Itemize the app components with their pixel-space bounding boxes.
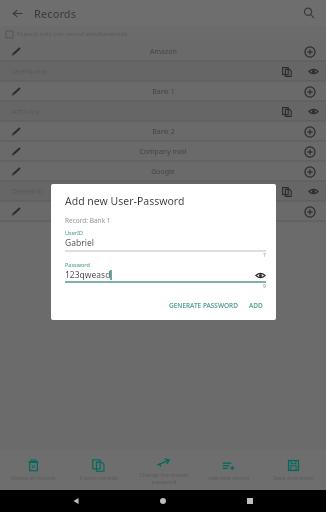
staticText: Record: Bank 1 [65,216,111,225]
staticText: Demetrio [12,187,44,197]
button[interactable]: Edit record [0,162,326,181]
staticText: Records [34,6,76,21]
button[interactable]: Edit record [0,42,32,61]
button[interactable]: UserName [0,62,326,81]
staticText: 7 [263,252,266,259]
button[interactable]: 123qweasd [65,269,266,281]
button[interactable]: Edit record [0,162,32,181]
button[interactable]: Copy [274,182,300,201]
button[interactable]: Back [65,490,87,512]
button[interactable]: Add entry [294,42,326,61]
staticText: Anthony [12,107,40,117]
button[interactable]: Demetrio [0,182,326,201]
button[interactable]: Recents [239,490,261,512]
staticText: UserID [65,229,83,236]
staticText: Bank 1 [152,87,175,97]
staticText: 123qweasd [65,269,111,281]
staticText: Company mail [139,147,187,157]
button[interactable]: ADD [246,298,266,313]
staticText: Export records [80,474,118,481]
staticText: 9 [263,283,266,290]
staticText: Save and return [273,474,315,481]
staticText: GENERATE PASSWORD [169,301,238,310]
button[interactable]: Delete all records [0,450,66,490]
button[interactable]: Reveal [300,182,326,201]
button[interactable]: Edit record [0,202,326,221]
button[interactable]: Search [292,0,326,26]
button[interactable]: Gabriel [65,237,266,249]
button[interactable]: Add entry [294,122,326,141]
staticText: Google [151,167,175,177]
button[interactable]: Edit record [0,122,32,141]
staticText: Bank 2 [152,127,175,137]
button[interactable]: Add entry [294,202,326,221]
button[interactable]: Edit record [0,122,326,141]
button[interactable]: Edit record [0,82,32,101]
button[interactable]: Edit record [0,82,326,101]
button[interactable]: Save and return [261,450,326,490]
button[interactable]: Home [152,490,174,512]
staticText: Add new User-Password [65,194,185,208]
button[interactable]: Add new record [196,450,261,490]
button[interactable]: Show password [254,269,266,281]
staticText: UserName [12,67,48,77]
staticText: Add new record [208,474,249,481]
staticText: Password [65,261,90,268]
button[interactable]: Edit record [0,202,32,221]
button[interactable]: Copy [274,62,300,81]
button[interactable]: Anthony [0,102,326,121]
button[interactable]: Add entry [294,82,326,101]
button[interactable]: Reveal [300,102,326,121]
staticText: Amazon [150,47,177,57]
staticText: Gabriel [65,237,94,249]
button[interactable]: Add entry [294,142,326,161]
staticText: ADD [249,301,263,310]
staticText: Expand only one record simultaneously [17,30,128,38]
staticText: Change the master password [139,471,189,485]
button[interactable]: Export records [66,450,131,490]
button[interactable]: Copy [274,102,300,121]
button[interactable]: Change the master password [131,450,196,490]
button[interactable]: Edit record [0,42,326,61]
button[interactable]: Edit record [0,142,326,161]
staticText: Delete all records [11,474,56,481]
button[interactable]: Add entry [294,162,326,181]
button[interactable]: Reveal [300,62,326,81]
button[interactable]: Edit record [0,142,32,161]
button[interactable]: GENERATE PASSWORD [166,298,241,313]
button[interactable]: Back [0,0,34,26]
